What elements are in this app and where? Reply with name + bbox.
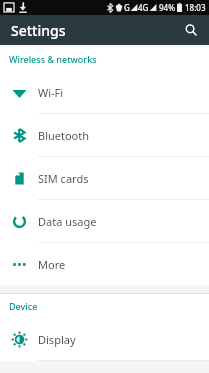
button[interactable]: More bbox=[0, 243, 209, 285]
staticText: Wireless & networks bbox=[9, 53, 97, 65]
button[interactable]: Search bbox=[178, 17, 204, 43]
button[interactable]: SIM cards bbox=[0, 157, 209, 199]
button[interactable]: Wi-Fi bbox=[0, 71, 209, 113]
staticText: G bbox=[124, 2, 130, 13]
staticText: Settings bbox=[11, 21, 66, 40]
button[interactable]: Bluetooth bbox=[0, 114, 209, 156]
staticText: 4G bbox=[138, 2, 149, 13]
staticText: Display bbox=[38, 332, 76, 347]
staticText: 94% bbox=[159, 2, 175, 13]
staticText: Bluetooth bbox=[38, 128, 90, 143]
staticText: SIM cards bbox=[38, 171, 89, 186]
staticText: Data usage bbox=[38, 214, 97, 229]
staticText: Device bbox=[9, 300, 38, 312]
staticText: More bbox=[38, 257, 66, 272]
staticText: Wi-Fi bbox=[38, 85, 64, 100]
button[interactable]: Display bbox=[0, 318, 209, 360]
staticText: 18:03 bbox=[185, 2, 206, 13]
button[interactable]: Data usage bbox=[0, 200, 209, 242]
